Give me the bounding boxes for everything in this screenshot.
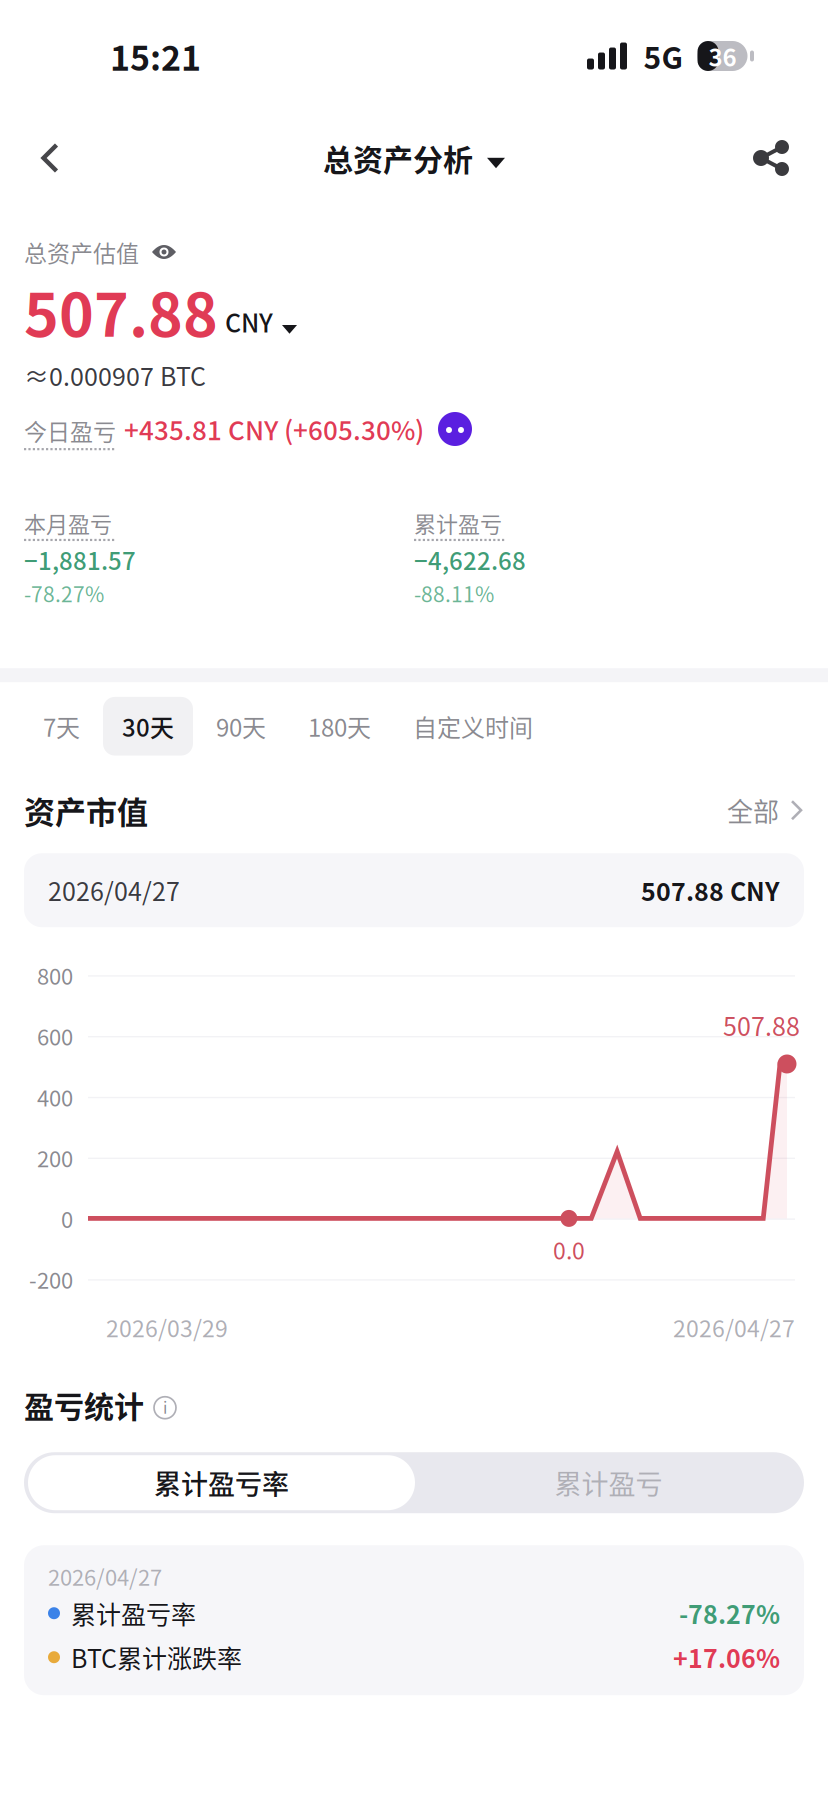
staticText: -78.27% [24,578,104,608]
staticText: 507.88 [723,1007,800,1043]
button[interactable]: 自定义时间 [394,697,552,756]
staticText: 180天 [308,709,371,744]
staticText: 全部 [727,791,779,829]
staticText: 400 [37,1081,73,1113]
button[interactable]: 总资产分析 [323,123,505,193]
button[interactable]: 180天 [289,697,390,756]
staticText: 0.0 [553,1233,585,1266]
button[interactable]: Back [8,116,92,200]
staticText: 累计盈亏率 [154,1463,289,1502]
staticText: 累计盈亏率 [71,1595,196,1631]
staticText: 600 [37,1020,73,1052]
staticText: i [163,1395,167,1418]
staticText: 2026/04/27 [48,872,180,908]
staticText: 2026/04/27 [673,1311,795,1344]
staticText: 资产市值 [24,788,148,833]
button[interactable]: 总资产估值 [24,236,177,268]
staticText: -200 [29,1263,73,1295]
staticText: 盈亏统计 [24,1383,144,1426]
staticText: 总资产估值 [24,235,139,269]
staticText: 2026/04/27 [48,1560,162,1592]
button[interactable]: 507.88 [24,282,297,340]
staticText: 7天 [43,709,80,744]
staticText: BTC累计涨跌率 [71,1639,242,1675]
staticText: 5G [643,34,683,78]
staticText: 总资产分析 [323,136,473,180]
staticText: ≈0.000907 BTC [24,357,206,393]
button[interactable]: 30天 [103,697,193,756]
staticText: 累计盈亏 [414,507,502,539]
staticText: +435.81 CNY (+605.30%) [124,410,424,448]
staticText: 15:21 [110,31,201,81]
button[interactable]: 累计盈亏率 [28,1455,415,1510]
button[interactable]: 累计盈亏 [415,1455,802,1510]
staticText: 今日盈亏 [24,414,116,447]
button[interactable]: 7天 [24,697,99,756]
staticText: 自定义时间 [413,709,533,744]
staticText: 507.88 [24,268,218,354]
staticText: 90天 [216,709,266,744]
staticText: -78.27% [679,1595,780,1631]
staticText: −1,881.57 [24,542,136,577]
staticText: 累计盈亏 [554,1463,662,1502]
button[interactable]: 全部 [727,785,804,835]
staticText: 800 [37,959,73,991]
staticText: 2026/03/29 [106,1311,228,1344]
button[interactable]: 90天 [197,697,285,756]
staticText: −4,622.68 [414,542,526,577]
staticText: 36 [708,39,736,73]
staticText: CNY [225,303,273,340]
staticText: 30天 [122,709,174,744]
staticText: 507.88 CNY [641,872,780,908]
staticText: 200 [37,1142,73,1174]
staticText: +17.06% [673,1639,780,1675]
staticText: 本月盈亏 [24,507,112,539]
staticText: -88.11% [414,578,494,608]
staticText: 0 [61,1202,73,1234]
button[interactable]: Share [730,116,814,200]
